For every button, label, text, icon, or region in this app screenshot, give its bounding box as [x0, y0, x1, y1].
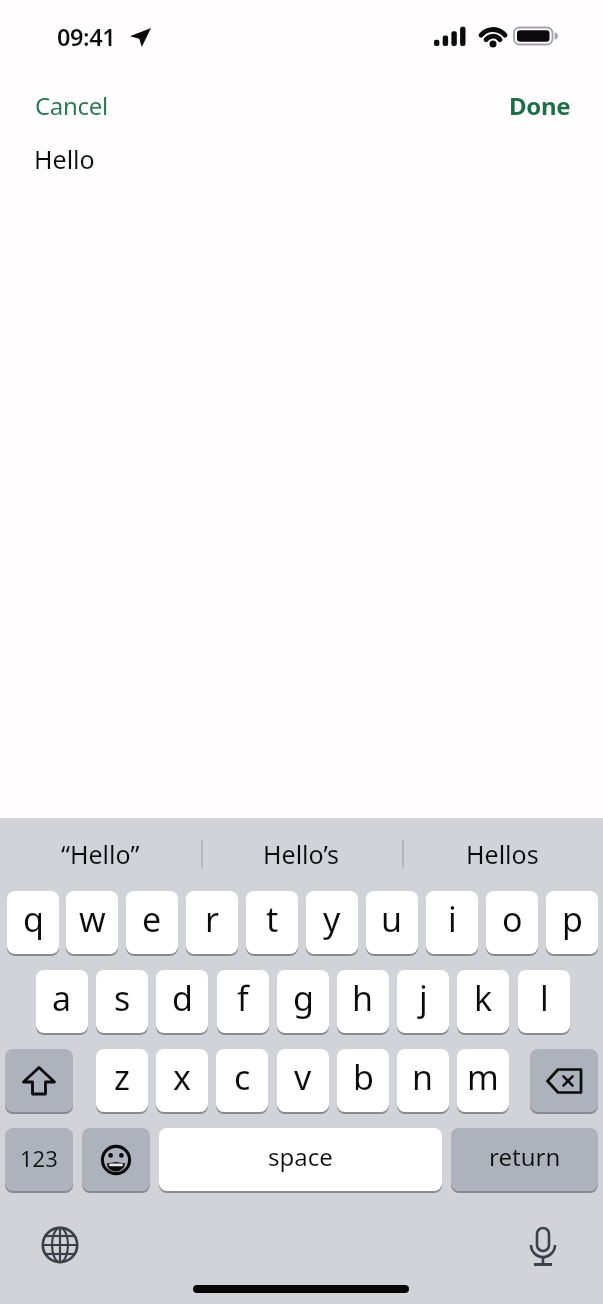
button[interactable]: e [126, 891, 178, 954]
staticText: t [266, 896, 279, 942]
staticText: s [114, 975, 131, 1021]
staticText: Hello’s [263, 837, 340, 871]
staticText: z [114, 1054, 130, 1100]
staticText: l [540, 975, 549, 1021]
staticText: space [268, 1140, 333, 1173]
button[interactable]: Done [477, 74, 603, 137]
staticText: return [489, 1140, 561, 1173]
button[interactable] [5, 1049, 73, 1112]
staticText: v [294, 1054, 312, 1100]
button[interactable]: d [156, 970, 208, 1033]
button[interactable]: g [277, 970, 329, 1033]
staticText: d [172, 975, 193, 1021]
staticText: Done [509, 89, 571, 122]
button[interactable]: v [277, 1049, 329, 1112]
staticText: a [52, 975, 72, 1021]
button[interactable]: a [36, 970, 88, 1033]
staticText: x [173, 1054, 191, 1100]
staticText: c [234, 1054, 251, 1100]
button[interactable]: b [337, 1049, 389, 1112]
staticText: Cancel [35, 89, 108, 122]
staticText: w [79, 896, 106, 942]
button[interactable]: p [546, 891, 598, 954]
button[interactable]: “Hello” [0, 820, 201, 888]
staticText: k [474, 975, 493, 1021]
button[interactable]: l [518, 970, 570, 1033]
staticText: f [237, 975, 249, 1021]
button[interactable]: t [246, 891, 298, 954]
button[interactable]: n [397, 1049, 449, 1112]
button[interactable]: return [451, 1128, 598, 1191]
button[interactable]: r [186, 891, 238, 954]
staticText: q [23, 896, 44, 942]
button[interactable]: Cancel [20, 74, 123, 137]
staticText: i [448, 896, 457, 942]
staticText: 123 [20, 1143, 58, 1173]
button[interactable]: k [457, 970, 509, 1033]
staticText: Hellos [466, 837, 539, 871]
staticText: r [205, 896, 220, 942]
button[interactable]: h [337, 970, 389, 1033]
button[interactable]: x [156, 1049, 208, 1112]
button[interactable]: q [7, 891, 59, 954]
button[interactable]: u [366, 891, 418, 954]
button[interactable] [32, 1217, 88, 1273]
button[interactable]: i [426, 891, 478, 954]
staticText: m [467, 1054, 499, 1100]
button[interactable]: s [96, 970, 148, 1033]
staticText: “Hello” [61, 837, 140, 871]
staticText: p [562, 896, 583, 942]
button[interactable]: m [457, 1049, 509, 1112]
button[interactable]: space [159, 1128, 442, 1191]
button[interactable]: o [486, 891, 538, 954]
button[interactable]: y [306, 891, 358, 954]
staticText: n [412, 1054, 434, 1100]
button[interactable]: c [216, 1049, 268, 1112]
button[interactable]: Hellos [402, 820, 603, 888]
staticText: 09:41 [57, 21, 116, 53]
button[interactable]: j [397, 970, 449, 1033]
button[interactable]: f [217, 970, 269, 1033]
button[interactable]: Hello’s [201, 820, 402, 888]
button[interactable]: 123 [5, 1128, 73, 1191]
button[interactable]: w [66, 891, 118, 954]
button[interactable] [82, 1128, 150, 1191]
staticText: e [142, 896, 162, 942]
staticText: b [353, 1054, 374, 1100]
button[interactable]: z [96, 1049, 148, 1112]
staticText: h [352, 975, 374, 1021]
staticText: o [502, 896, 523, 942]
staticText: y [323, 896, 341, 942]
button[interactable] [515, 1220, 571, 1276]
staticText: Hello [34, 142, 95, 176]
staticText: j [419, 975, 428, 1021]
button[interactable] [530, 1049, 598, 1112]
staticText: u [381, 896, 403, 942]
staticText: g [293, 975, 314, 1021]
